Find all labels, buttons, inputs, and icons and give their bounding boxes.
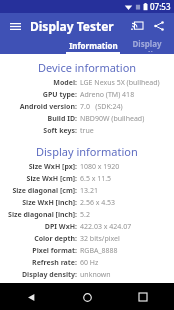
staticText: Display information	[36, 144, 138, 159]
button[interactable]: Back	[20, 286, 42, 308]
staticText: Size WxH [inch]:	[22, 198, 77, 208]
button[interactable]: Cast	[127, 16, 147, 36]
button[interactable]: Information	[66, 38, 120, 52]
staticText: 422.03 x 424.07	[80, 222, 132, 232]
staticText: Size diagonal [inch]:	[8, 210, 77, 220]
staticText: Build ID:	[47, 114, 77, 124]
staticText: 2.56 x 4.53	[80, 198, 116, 208]
staticText: Size diagonal [cm]:	[12, 186, 77, 196]
button[interactable]: Share	[149, 16, 169, 36]
staticText: Android version:	[19, 102, 77, 112]
staticText: true	[80, 126, 94, 136]
staticText: 5.2	[80, 210, 90, 220]
staticText: 1080 x 1920	[80, 162, 120, 172]
staticText: RGBA_8888	[80, 246, 118, 256]
staticText: unknown	[80, 270, 111, 280]
staticText: Adreno (TM) 418	[80, 90, 135, 100]
staticText: Color depth:	[34, 234, 77, 244]
staticText: 32 bits/pixel	[80, 234, 120, 244]
staticText: Display quality	[120, 38, 174, 52]
staticText: NBD90W (bullhead)	[80, 114, 145, 124]
button[interactable]: Home	[76, 286, 98, 308]
staticText: Display Tester	[30, 18, 114, 34]
staticText: 7.0 (SDK:24)	[80, 102, 123, 112]
staticText: Refresh rate:	[32, 258, 77, 268]
staticText: Soft keys:	[43, 126, 77, 136]
staticText: Model:	[53, 78, 77, 88]
staticText: 07:53	[150, 1, 171, 12]
staticText: GPU type:	[42, 90, 77, 100]
staticText: Pixel format:	[32, 246, 77, 256]
staticText: Size WxH [px]:	[28, 162, 77, 172]
button[interactable]: Open navigation drawer	[6, 17, 24, 35]
staticText: Device information	[38, 60, 137, 75]
staticText: LGE Nexus 5X (bullhead)	[80, 78, 160, 88]
staticText: 60 Hz	[80, 258, 99, 268]
staticText: Size WxH [cm]:	[26, 174, 77, 184]
button[interactable]: Recent apps	[132, 286, 154, 308]
button[interactable]: Display quality	[120, 38, 174, 52]
staticText: Information	[69, 40, 118, 51]
staticText: 13.21	[80, 186, 98, 196]
staticText: 6.5 x 11.5	[80, 174, 112, 184]
staticText: Display density:	[21, 270, 77, 280]
staticText: DPI WxH:	[44, 222, 77, 232]
